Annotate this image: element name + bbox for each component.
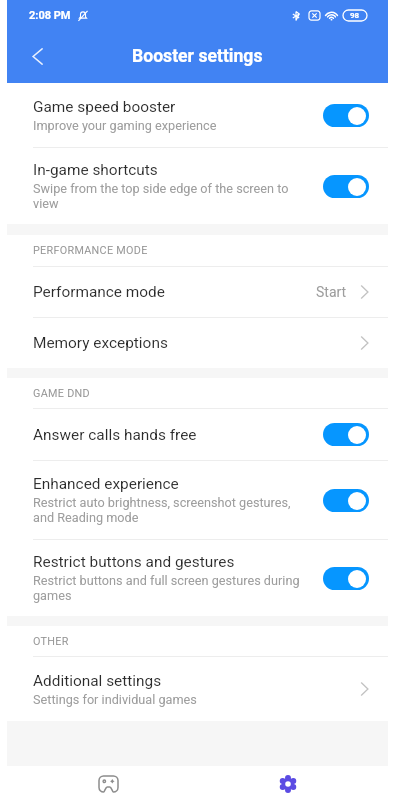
button[interactable]: Memory exceptions: [7, 318, 388, 368]
staticText: 98: [350, 11, 360, 20]
staticText: In-game shortcuts: [33, 161, 158, 179]
button[interactable]: Enhanced experience: [7, 461, 388, 539]
staticText: Swipe from the top side edge of the scre…: [33, 181, 289, 211]
staticText: OTHER: [33, 635, 69, 648]
button[interactable]: In-game shortcuts: [7, 148, 388, 224]
staticText: Restrict auto brightness, screenshot ges…: [33, 495, 291, 525]
staticText: GAME DND: [33, 387, 90, 400]
staticText: Restrict buttons and gestures: [33, 553, 235, 571]
button[interactable]: Toggle: [323, 489, 369, 512]
staticText: Game speed booster: [33, 98, 176, 116]
staticText: Additional settings: [33, 672, 162, 690]
button[interactable]: Additional settings: [7, 657, 388, 721]
button[interactable]: Toggle: [323, 175, 369, 198]
staticText: Restrict buttons and full screen gesture…: [33, 573, 300, 603]
button[interactable]: Games: [7, 766, 197, 793]
button[interactable]: Toggle: [323, 567, 369, 590]
staticText: Start: [316, 284, 347, 300]
staticText: Answer calls hands free: [33, 426, 197, 444]
button[interactable]: Back: [7, 30, 67, 83]
staticText: Settings for individual games: [33, 692, 197, 707]
staticText: Improve your gaming experience: [33, 118, 217, 133]
button[interactable]: Answer calls hands free: [7, 409, 388, 460]
button[interactable]: Restrict buttons and gestures: [7, 540, 388, 616]
button[interactable]: Toggle: [323, 104, 369, 127]
staticText: 2:08 PM: [29, 9, 71, 22]
staticText: Booster settings: [132, 46, 263, 67]
staticText: PERFORMANCE MODE: [33, 244, 148, 257]
staticText: Performance mode: [33, 283, 165, 301]
button[interactable]: Settings: [197, 766, 388, 793]
button[interactable]: Toggle: [323, 423, 369, 446]
staticText: Enhanced experience: [33, 475, 179, 493]
button[interactable]: Game speed booster: [7, 83, 388, 147]
button[interactable]: Performance mode: [7, 267, 388, 317]
staticText: Memory exceptions: [33, 334, 168, 352]
